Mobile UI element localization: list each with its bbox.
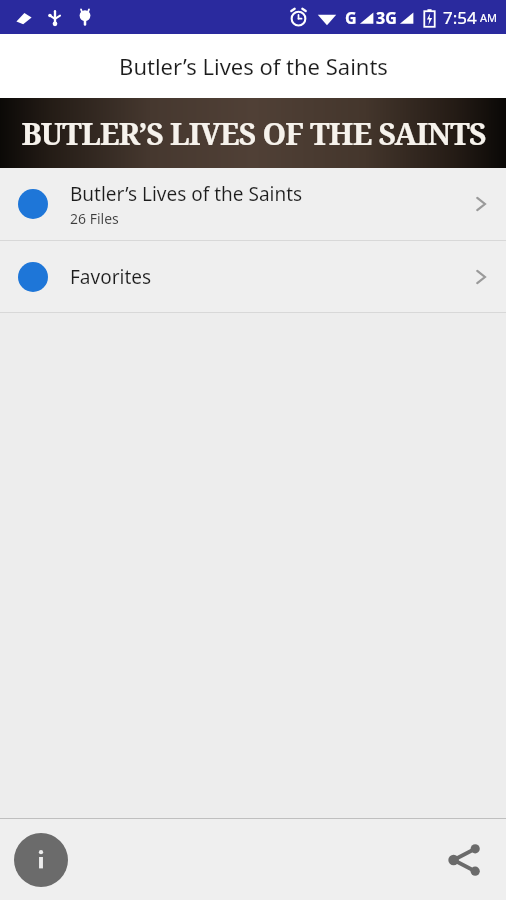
staticText: 3G: [376, 7, 397, 29]
button[interactable]: Favorites: [0, 241, 506, 312]
staticText: 26 Files: [70, 209, 119, 228]
button[interactable]: Share: [436, 832, 492, 888]
staticText: 7:54: [443, 6, 477, 29]
staticText: AM: [480, 10, 498, 25]
staticText: Butler’s Lives of the Saints: [119, 51, 388, 81]
button[interactable]: Information: [14, 833, 68, 887]
button[interactable]: Butler’s Lives of the Saints: [0, 168, 506, 240]
staticText: G: [345, 7, 357, 29]
staticText: Favorites: [70, 264, 152, 290]
staticText: Butler’s Lives of the Saints: [70, 181, 303, 207]
staticText: BUTLER’S LIVES OF THE SAINTS: [21, 113, 486, 154]
